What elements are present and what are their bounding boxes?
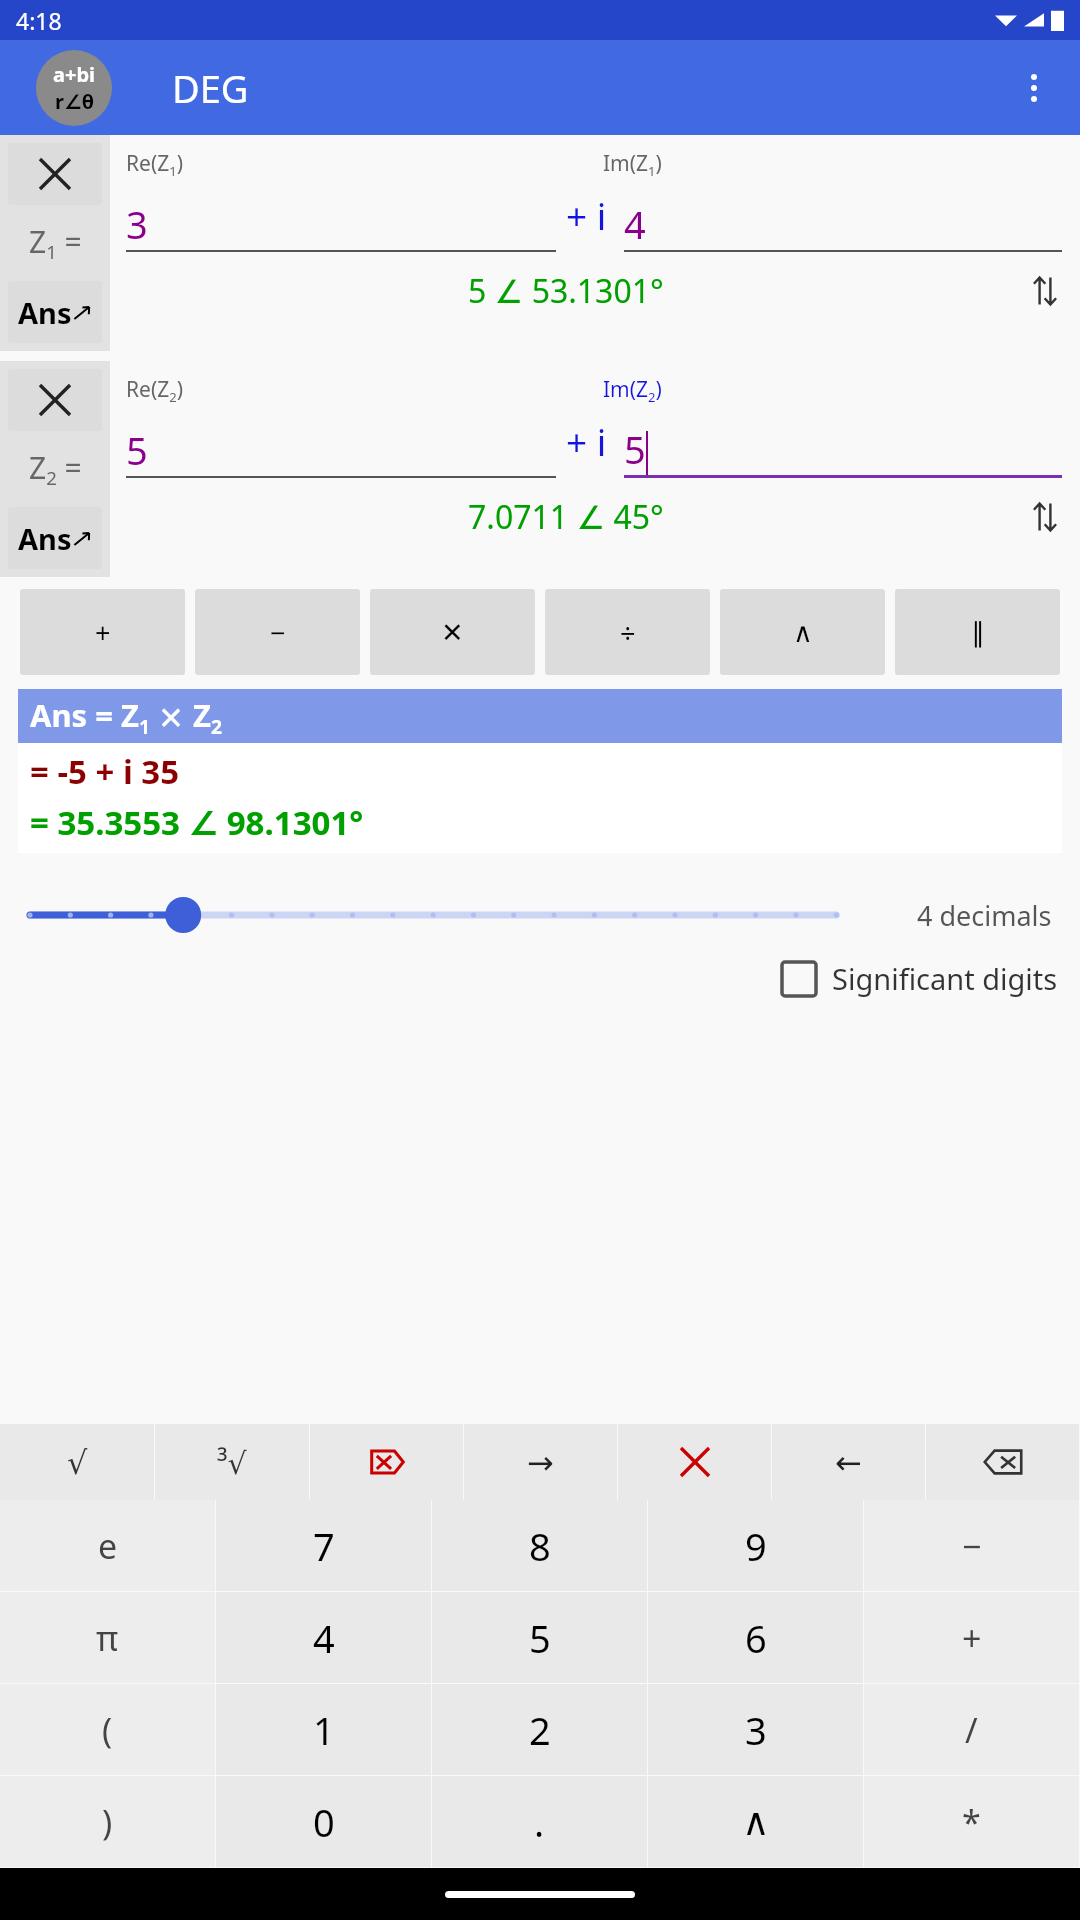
button[interactable]: Swap <box>1022 268 1068 314</box>
staticText: 7.0711 ∠ 45° <box>468 495 664 539</box>
staticText: Significant digits <box>832 959 1058 998</box>
staticText: ∧ <box>793 617 813 648</box>
button[interactable]: Ans <box>8 281 102 343</box>
button[interactable]: e <box>0 1500 215 1591</box>
staticText: √ <box>67 1444 88 1481</box>
staticText: Ans <box>18 519 72 558</box>
staticText: 0 <box>313 1796 335 1848</box>
staticText: DEG <box>172 62 249 114</box>
button[interactable]: More options <box>1010 64 1058 112</box>
staticText: Re(Z1) <box>126 149 183 180</box>
button[interactable]: − <box>864 1500 1079 1591</box>
button[interactable]: Backspace <box>926 1424 1079 1500</box>
button[interactable]: Significant digits <box>782 959 1058 998</box>
staticText: π <box>96 1615 119 1661</box>
button[interactable]: ✕ <box>370 589 535 675</box>
button[interactable]: Clear <box>618 1424 771 1500</box>
staticText: 3 <box>126 198 148 250</box>
staticText: 4 decimals <box>917 897 1052 934</box>
staticText: 5 ∠ 53.1301° <box>468 269 664 313</box>
button[interactable]: π <box>0 1592 215 1683</box>
button[interactable]: Clear <box>8 369 102 431</box>
staticText: 4 <box>313 1612 335 1664</box>
button[interactable]: 8 <box>432 1500 647 1591</box>
button[interactable]: ) <box>0 1776 215 1867</box>
button[interactable]: ³√ <box>155 1424 309 1500</box>
staticText: + <box>95 614 111 651</box>
staticText: ( <box>102 1707 113 1753</box>
button[interactable]: ∧ <box>648 1776 863 1867</box>
staticText: − <box>270 614 286 651</box>
button[interactable]: App icon <box>36 50 112 126</box>
button[interactable]: / <box>864 1684 1079 1775</box>
staticText: + i <box>566 190 607 240</box>
staticText: Z2 = <box>29 447 82 491</box>
button[interactable]: * <box>864 1776 1079 1867</box>
button[interactable]: + <box>864 1592 1079 1683</box>
staticText: ✕ <box>150 696 193 738</box>
button[interactable]: ( <box>0 1684 215 1775</box>
button[interactable]: 0 <box>216 1776 431 1867</box>
staticText: 5 <box>126 424 148 476</box>
button[interactable]: 9 <box>648 1500 863 1591</box>
button[interactable]: . <box>432 1776 647 1867</box>
staticText: * <box>962 1799 981 1845</box>
staticText: 4:18 <box>16 5 62 36</box>
button[interactable]: ∥ <box>895 589 1060 675</box>
staticText: 9 <box>745 1520 767 1572</box>
button[interactable]: Clear all <box>310 1424 463 1500</box>
staticText: 5 <box>624 423 646 475</box>
staticText: = -5 + i 35 <box>30 749 180 794</box>
button[interactable]: 5 <box>126 416 556 476</box>
staticText: + <box>962 1615 982 1661</box>
staticText: . <box>534 1796 545 1848</box>
button[interactable]: 4 <box>216 1592 431 1683</box>
staticText: 3 <box>745 1704 767 1756</box>
staticText: ∧ <box>742 1800 770 1844</box>
staticText: Re(Z2) <box>126 375 183 406</box>
button[interactable]: Clear <box>8 143 102 205</box>
button[interactable]: Ans <box>8 507 102 569</box>
staticText: ✕ <box>441 617 464 648</box>
button[interactable]: ÷ <box>545 589 710 675</box>
button[interactable]: Right <box>464 1424 617 1500</box>
button[interactable]: 5 <box>624 416 1062 475</box>
button[interactable]: − <box>195 589 360 675</box>
staticText: = 35.3553 ∠ 98.1301° <box>30 800 364 845</box>
staticText: 7 <box>313 1520 335 1572</box>
button[interactable]: 4 <box>624 190 1062 250</box>
staticText: Z1 = <box>29 221 82 265</box>
button[interactable]: Ans = Z1 <box>18 689 1062 743</box>
staticText: Im(Z1) <box>603 149 662 180</box>
staticText: 5 <box>529 1612 551 1664</box>
staticText: → <box>527 1444 554 1481</box>
staticText: ∥ <box>971 617 985 648</box>
button[interactable]: 6 <box>648 1592 863 1683</box>
button[interactable]: 2 <box>432 1684 647 1775</box>
button[interactable]: 1 <box>216 1684 431 1775</box>
button[interactable]: Swap <box>1022 494 1068 540</box>
staticText: 2 <box>529 1704 551 1756</box>
button[interactable]: Left <box>772 1424 925 1500</box>
staticText: ) <box>102 1799 113 1845</box>
staticText: a+bi <box>53 61 96 88</box>
button[interactable]: 3 <box>126 190 556 250</box>
staticText: − <box>962 1523 982 1569</box>
button[interactable]: 3 <box>648 1684 863 1775</box>
button[interactable]: + <box>20 589 185 675</box>
staticText: 1 <box>313 1704 335 1756</box>
staticText: r∠θ <box>55 88 95 115</box>
button[interactable]: √ <box>0 1424 154 1500</box>
button[interactable]: ∧ <box>720 589 885 675</box>
staticText: / <box>965 1707 978 1753</box>
button[interactable]: 7 <box>216 1500 431 1591</box>
button[interactable]: 5 <box>432 1592 647 1683</box>
staticText: + i <box>566 416 607 466</box>
staticText: Ans <box>18 293 72 332</box>
staticText: ³√ <box>217 1442 247 1483</box>
staticText: Im(Z2) <box>603 375 662 406</box>
staticText: 4 <box>624 198 646 250</box>
staticText: 6 <box>745 1612 767 1664</box>
button[interactable] <box>30 885 897 945</box>
staticText: Z2 <box>193 694 222 739</box>
